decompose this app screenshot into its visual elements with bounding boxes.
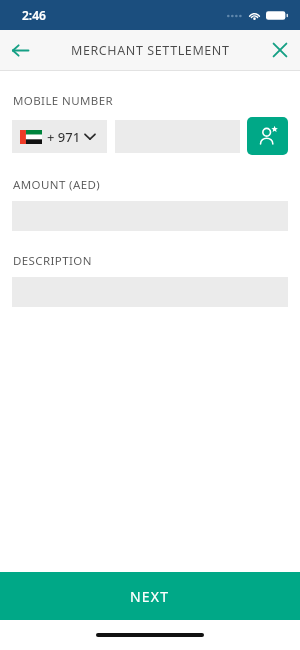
staticText: 2:46 <box>22 7 46 23</box>
staticText: AMOUNT (AED) <box>13 177 101 193</box>
staticText: + 971 <box>47 128 81 146</box>
button[interactable]: NEXT <box>0 572 300 620</box>
staticText: NEXT <box>130 587 170 606</box>
button[interactable]: + 971 <box>12 120 107 153</box>
staticText: DESCRIPTION <box>13 253 92 269</box>
staticText: MOBILE NUMBER <box>13 93 113 109</box>
button[interactable]: Back <box>0 30 40 70</box>
button[interactable]: Pick contact <box>247 117 288 155</box>
staticText: MERCHANT SETTLEMENT <box>71 42 230 59</box>
button[interactable]: Close <box>260 30 300 70</box>
